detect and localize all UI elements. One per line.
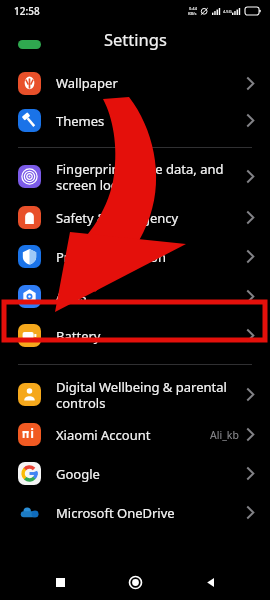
button[interactable]: Apps — [0, 276, 270, 316]
button[interactable]: Home — [120, 567, 150, 597]
staticText: Fingerprints, face data, and screen lock — [56, 160, 244, 193]
button[interactable]: Back — [195, 567, 225, 597]
staticText: Ali_kb — [210, 428, 239, 442]
button[interactable]: Fingerprints, face data, and screen lock — [0, 155, 270, 198]
staticText: 12:58 — [14, 4, 40, 18]
staticText: Privacy protection — [56, 248, 244, 266]
staticText: Microsoft OneDrive — [56, 504, 244, 522]
staticText: 0.44 — [189, 6, 197, 11]
staticText: Apps — [56, 287, 244, 305]
staticText: 4.5G — [223, 9, 232, 14]
staticText: Wallpaper — [56, 74, 244, 92]
staticText: Xiaomi Account — [56, 426, 210, 444]
button[interactable]: Digital Wellbeing & parental controls — [0, 373, 270, 415]
button[interactable]: Privacy protection — [0, 237, 270, 276]
staticText: Google — [56, 465, 244, 483]
button[interactable]: Microsoft OneDrive — [0, 493, 270, 532]
staticText: Battery — [56, 327, 244, 345]
button[interactable]: Google — [0, 454, 270, 493]
staticText: Themes — [56, 112, 244, 130]
button[interactable]: Xiaomi Account — [0, 415, 270, 454]
button[interactable]: Safety & emergency — [0, 198, 270, 237]
staticText: Digital Wellbeing & parental controls — [56, 378, 244, 411]
staticText: KB/s — [188, 11, 197, 16]
button[interactable]: Recents — [45, 567, 75, 597]
button[interactable]: Battery — [0, 316, 270, 355]
button[interactable]: Themes — [0, 102, 270, 139]
staticText: Safety & emergency — [56, 209, 244, 227]
button[interactable]: Wallpaper — [0, 64, 270, 102]
staticText: Settings — [104, 28, 167, 50]
